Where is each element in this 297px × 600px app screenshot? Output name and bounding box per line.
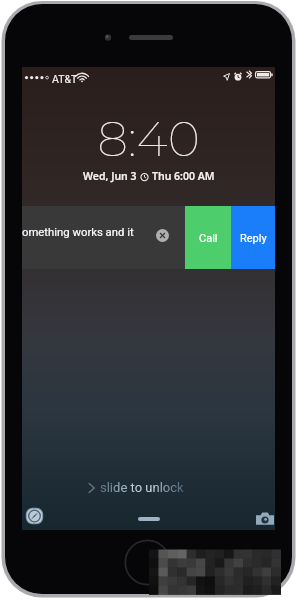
staticText: Thu 6:00 AM (152, 169, 215, 183)
staticText: Reply (240, 230, 267, 246)
staticText: Call (199, 230, 218, 246)
staticText: omething works and it (22, 224, 134, 241)
staticText: Wed, Jun 3 (83, 169, 137, 183)
button[interactable]: Safari (25, 507, 44, 525)
button[interactable]: Dismiss (156, 229, 169, 242)
staticText: 8:40 (97, 109, 200, 168)
button[interactable]: Camera (256, 512, 274, 525)
staticText: AT&T (52, 72, 78, 87)
button[interactable]: Reply (231, 206, 275, 269)
button[interactable]: omething works and it (22, 206, 185, 269)
staticText: slide to unlock (100, 478, 184, 497)
button[interactable]: Call (185, 206, 231, 269)
